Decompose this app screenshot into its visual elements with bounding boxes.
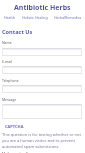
staticText: This question is for testing whether or … [2, 132, 81, 137]
staticText: HerbalRemedies [54, 15, 82, 20]
staticText: Telephone [2, 78, 19, 83]
button[interactable] [2, 66, 82, 74]
staticText: CAPTCHA [5, 124, 24, 129]
staticText: Holistic Healing [22, 15, 48, 20]
button[interactable] [2, 48, 82, 56]
button[interactable]: Holistic Healing [22, 15, 48, 20]
staticText: Message [2, 97, 17, 102]
button[interactable]: Health [4, 15, 15, 20]
button[interactable]: HerbalRemedies [54, 15, 82, 20]
staticText: Health [4, 15, 15, 20]
staticText: E-mail [2, 59, 12, 64]
staticText: Antibiotic Herbs [14, 3, 71, 13]
staticText: automated spam submissions. [2, 144, 60, 149]
staticText: Name [2, 40, 12, 45]
staticText: Contact Us [2, 28, 33, 36]
button[interactable] [2, 104, 82, 119]
staticText: you are a human visitor and to prevent [2, 138, 75, 143]
button[interactable] [2, 85, 82, 93]
staticText: Math question * [2, 151, 28, 153]
